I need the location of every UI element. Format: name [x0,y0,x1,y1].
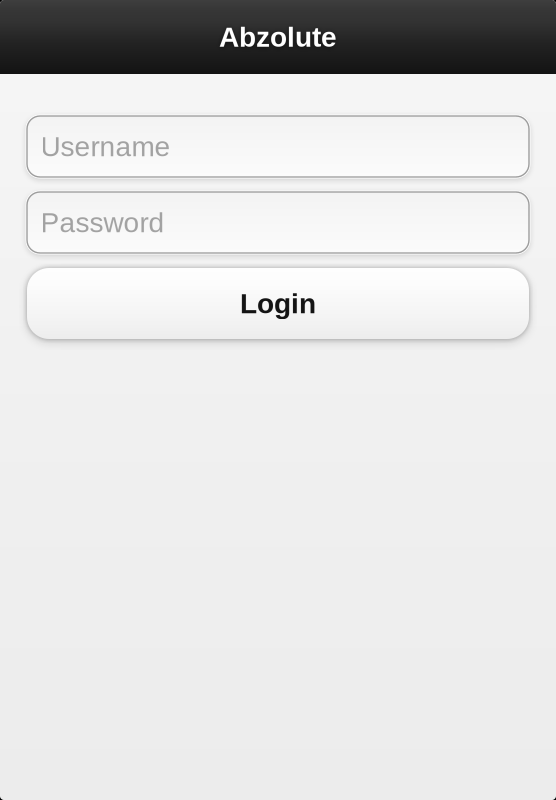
staticText: Abzolute [219,21,337,53]
staticText: Username [40,131,170,162]
button[interactable]: Password [27,192,529,253]
staticText: Password [40,207,164,238]
button[interactable]: Username [27,116,529,177]
button[interactable]: Login [27,268,529,339]
staticText: Login [240,288,316,319]
